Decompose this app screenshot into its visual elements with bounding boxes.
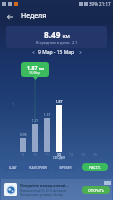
staticText: 0.98 xyxy=(17,132,29,137)
staticText: ШАГ xyxy=(9,165,17,170)
button[interactable]: ШАГ xyxy=(2,163,23,171)
staticText: Повышенный %. От 6 месяцев. xyxy=(20,189,67,193)
button[interactable]: Back xyxy=(3,10,16,23)
staticText: В среднем в день: 2.1 xyxy=(36,40,78,45)
staticText: 1.87 xyxy=(53,99,65,104)
staticText: 39% 21:17 xyxy=(89,1,111,7)
button[interactable]: ВРЕМЯ xyxy=(54,163,77,171)
button[interactable]: ОТКРЫТЬ xyxy=(82,186,110,194)
staticText: 13 xyxy=(65,152,77,157)
staticText: ОТКРЫТЬ xyxy=(88,188,104,193)
staticText: 10 xyxy=(29,152,41,157)
button[interactable]: 1.87 км xyxy=(21,62,49,77)
staticText: 15 xyxy=(89,152,101,157)
button[interactable]: Next week xyxy=(75,48,85,56)
staticText: Откройте вклад онлай... xyxy=(20,183,69,188)
staticText: КАЛОРИИ xyxy=(29,165,47,170)
staticText: 16 Мар xyxy=(29,71,41,75)
staticText: СЕГОДНЯ xyxy=(53,156,65,160)
staticText: 9 Мар - 15 Мар xyxy=(38,49,75,56)
staticText: ВРЕМЯ xyxy=(59,165,72,170)
button[interactable]: РАССТ. xyxy=(82,163,108,171)
staticText: 12 xyxy=(53,152,65,157)
staticText: 1.37 xyxy=(41,112,53,117)
staticText: 1.21 xyxy=(29,118,41,123)
staticText: Прозрачные условия. Вклад... xyxy=(20,193,66,197)
staticText: 8.49 км xyxy=(44,29,70,40)
staticText: 9 xyxy=(17,152,29,157)
staticText: 1 xyxy=(12,102,15,107)
staticText: 1.87 км xyxy=(27,64,44,71)
staticText: 14 xyxy=(77,152,89,157)
staticText: 11 xyxy=(41,152,53,157)
staticText: Неделя xyxy=(21,11,47,21)
button[interactable]: 8.49 км xyxy=(6,26,107,48)
button[interactable]: Откройте вклад онлай... xyxy=(1,179,112,200)
staticText: РАССТ. xyxy=(89,165,101,170)
button[interactable]: Previous week xyxy=(28,48,38,56)
button[interactable]: КАЛОРИИ xyxy=(24,163,52,171)
